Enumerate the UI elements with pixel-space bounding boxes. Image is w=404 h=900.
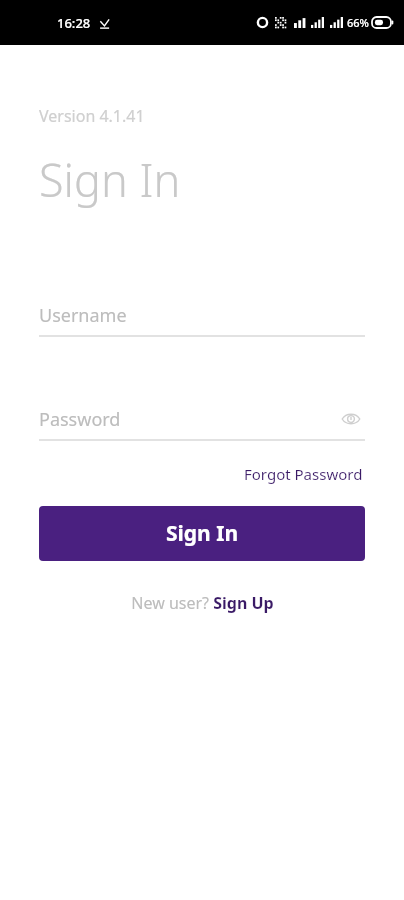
- staticText: Username: [39, 303, 127, 328]
- staticText: 16:28: [57, 14, 91, 32]
- staticText: New user? Sign Up: [131, 592, 274, 614]
- button[interactable]: Show password: [337, 405, 365, 433]
- button[interactable]: Forgot Password: [242, 460, 365, 488]
- button[interactable]: Sign In: [39, 506, 365, 561]
- staticText: Forgot Password: [244, 464, 363, 484]
- staticText: Sign In: [166, 519, 239, 548]
- button[interactable]: Password: [39, 399, 365, 439]
- button[interactable]: New user? Sign Up: [127, 589, 278, 617]
- button[interactable]: Username: [39, 295, 365, 335]
- staticText: Sign In: [39, 149, 181, 210]
- staticText: Version 4.1.41: [39, 105, 145, 127]
- staticText: Password: [39, 407, 121, 432]
- staticText: 66%: [347, 15, 369, 30]
